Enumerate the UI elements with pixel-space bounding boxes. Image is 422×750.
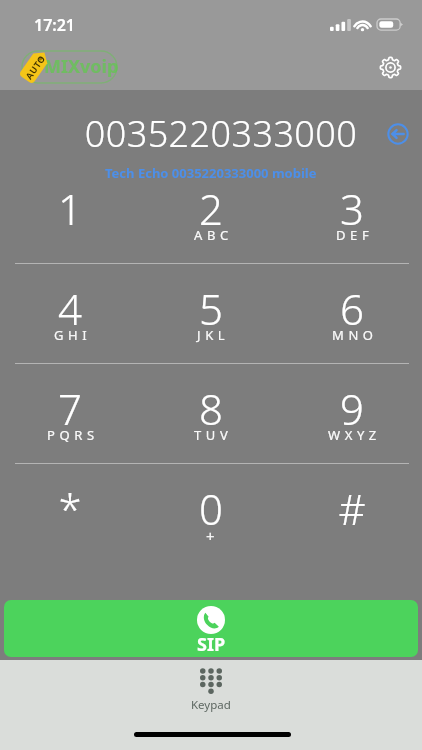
- staticText: Keypad: [191, 697, 231, 713]
- button[interactable]: 0: [140, 464, 281, 564]
- button[interactable]: 3: [281, 164, 422, 264]
- staticText: 7: [58, 380, 82, 437]
- button[interactable]: 4: [0, 264, 140, 364]
- button[interactable]: 6: [281, 264, 422, 364]
- button[interactable]: *: [0, 464, 140, 564]
- staticText: 0: [199, 480, 223, 537]
- staticText: GHI: [54, 326, 92, 344]
- button[interactable]: 5: [140, 264, 281, 364]
- button[interactable]: 7: [0, 364, 140, 464]
- staticText: AUTO: [22, 52, 48, 81]
- staticText: MNO: [332, 326, 378, 344]
- staticText: 2: [199, 180, 223, 237]
- staticText: WXYZ: [328, 426, 381, 444]
- staticText: SIP: [197, 632, 226, 657]
- staticText: DEF: [336, 226, 374, 244]
- staticText: #: [338, 480, 366, 537]
- button[interactable]: 9: [281, 364, 422, 464]
- button[interactable]: 2: [140, 164, 281, 264]
- button[interactable]: 1: [0, 164, 140, 264]
- staticText: JKL: [197, 326, 230, 344]
- staticText: *: [58, 480, 82, 537]
- staticText: TUV: [194, 426, 233, 444]
- button[interactable]: Settings: [374, 51, 406, 83]
- button[interactable]: SIP: [4, 600, 418, 657]
- staticText: 8: [199, 380, 223, 437]
- staticText: Tech Echo 0035220333000 mobile: [105, 164, 317, 182]
- staticText: 3: [340, 180, 364, 237]
- staticText: ABC: [194, 226, 233, 244]
- staticText: 4: [58, 280, 82, 337]
- button[interactable]: 8: [140, 364, 281, 464]
- button[interactable]: MIXvoip: [8, 50, 120, 84]
- button[interactable]: #: [281, 464, 422, 564]
- staticText: 6: [340, 280, 364, 337]
- staticText: +: [206, 526, 215, 546]
- staticText: 1: [58, 180, 82, 237]
- staticText: 9: [340, 380, 364, 437]
- staticText: 5: [199, 280, 223, 337]
- button[interactable]: Backspace: [381, 117, 415, 151]
- staticText: MIXvoip: [44, 54, 119, 79]
- staticText: 0035220333000: [10, 109, 422, 158]
- button[interactable]: Keypad: [166, 660, 256, 716]
- staticText: PQRS: [47, 426, 99, 444]
- staticText: 17:21: [34, 14, 76, 36]
